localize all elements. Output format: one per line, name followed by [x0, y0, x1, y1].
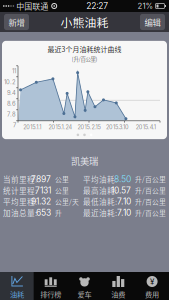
staticText: 2015.3.10: [106, 124, 129, 131]
staticText: 最近油耗:: [83, 207, 117, 218]
staticText: 7: [13, 122, 16, 129]
staticText: 当前里程:: [3, 174, 37, 185]
staticText: (升/百公里): [71, 55, 97, 63]
staticText: 11: [12, 68, 16, 75]
staticText: 公里: [55, 185, 69, 195]
staticText: 7131: [35, 185, 51, 195]
staticText: 21%: [137, 1, 153, 11]
staticText: 中国联通: [16, 0, 48, 12]
button[interactable]: 爱车: [68, 272, 101, 300]
staticText: ¥: [150, 277, 154, 286]
staticText: 10.57: [111, 185, 131, 195]
button[interactable]: 油费: [101, 272, 135, 300]
button[interactable]: 编辑: [140, 14, 165, 30]
button[interactable]: ¥: [135, 272, 169, 300]
staticText: 升/百公里: [135, 197, 166, 206]
staticText: 7.10: [117, 208, 131, 218]
staticText: 2015.2.15: [77, 124, 100, 131]
button[interactable]: 排行榜: [34, 272, 68, 300]
staticText: 编辑: [144, 16, 160, 28]
staticText: 最近3个月油耗统计曲线: [47, 44, 121, 54]
staticText: 加油总量:: [3, 207, 37, 218]
staticText: 7897: [31, 174, 51, 184]
staticText: 统计里程:: [3, 185, 37, 196]
staticText: 油费: [111, 289, 125, 299]
staticText: 91.32: [31, 196, 51, 207]
staticText: 8.6: [7, 100, 16, 107]
staticText: 凯美瑞: [71, 154, 98, 167]
staticText: 排行榜: [40, 289, 61, 299]
staticText: 2015.1.1: [23, 124, 41, 131]
staticText: 7.10: [117, 196, 131, 207]
staticText: 爱车: [77, 289, 91, 299]
staticText: 油耗: [10, 289, 24, 299]
staticText: 平均油耗:: [83, 174, 117, 185]
staticText: 平均里程:: [3, 196, 37, 207]
staticText: 22:27: [86, 1, 108, 11]
staticText: 升/百公里: [135, 185, 166, 195]
staticText: 653: [36, 208, 51, 218]
staticText: 新增: [8, 16, 24, 28]
button[interactable]: 新增: [4, 14, 29, 30]
staticText: 最低油耗:: [83, 196, 117, 207]
staticText: 8.50: [114, 174, 131, 184]
staticText: 公里: [55, 174, 69, 184]
staticText: 2015.1.24: [49, 124, 73, 131]
staticText: 7.8: [7, 111, 16, 118]
staticText: 费用: [145, 289, 159, 299]
staticText: 9.4: [7, 89, 16, 96]
staticText: 2015.4.1: [136, 124, 156, 131]
staticText: 公里/天: [55, 197, 79, 206]
staticText: 小熊油耗: [60, 13, 108, 31]
staticText: 10.2: [4, 78, 16, 86]
staticText: 升/百公里: [135, 174, 166, 184]
staticText: 最高油耗:: [83, 185, 117, 196]
staticText: 升: [55, 208, 62, 218]
button[interactable]: 油耗: [0, 272, 34, 300]
staticText: 升/百公里: [135, 208, 166, 218]
